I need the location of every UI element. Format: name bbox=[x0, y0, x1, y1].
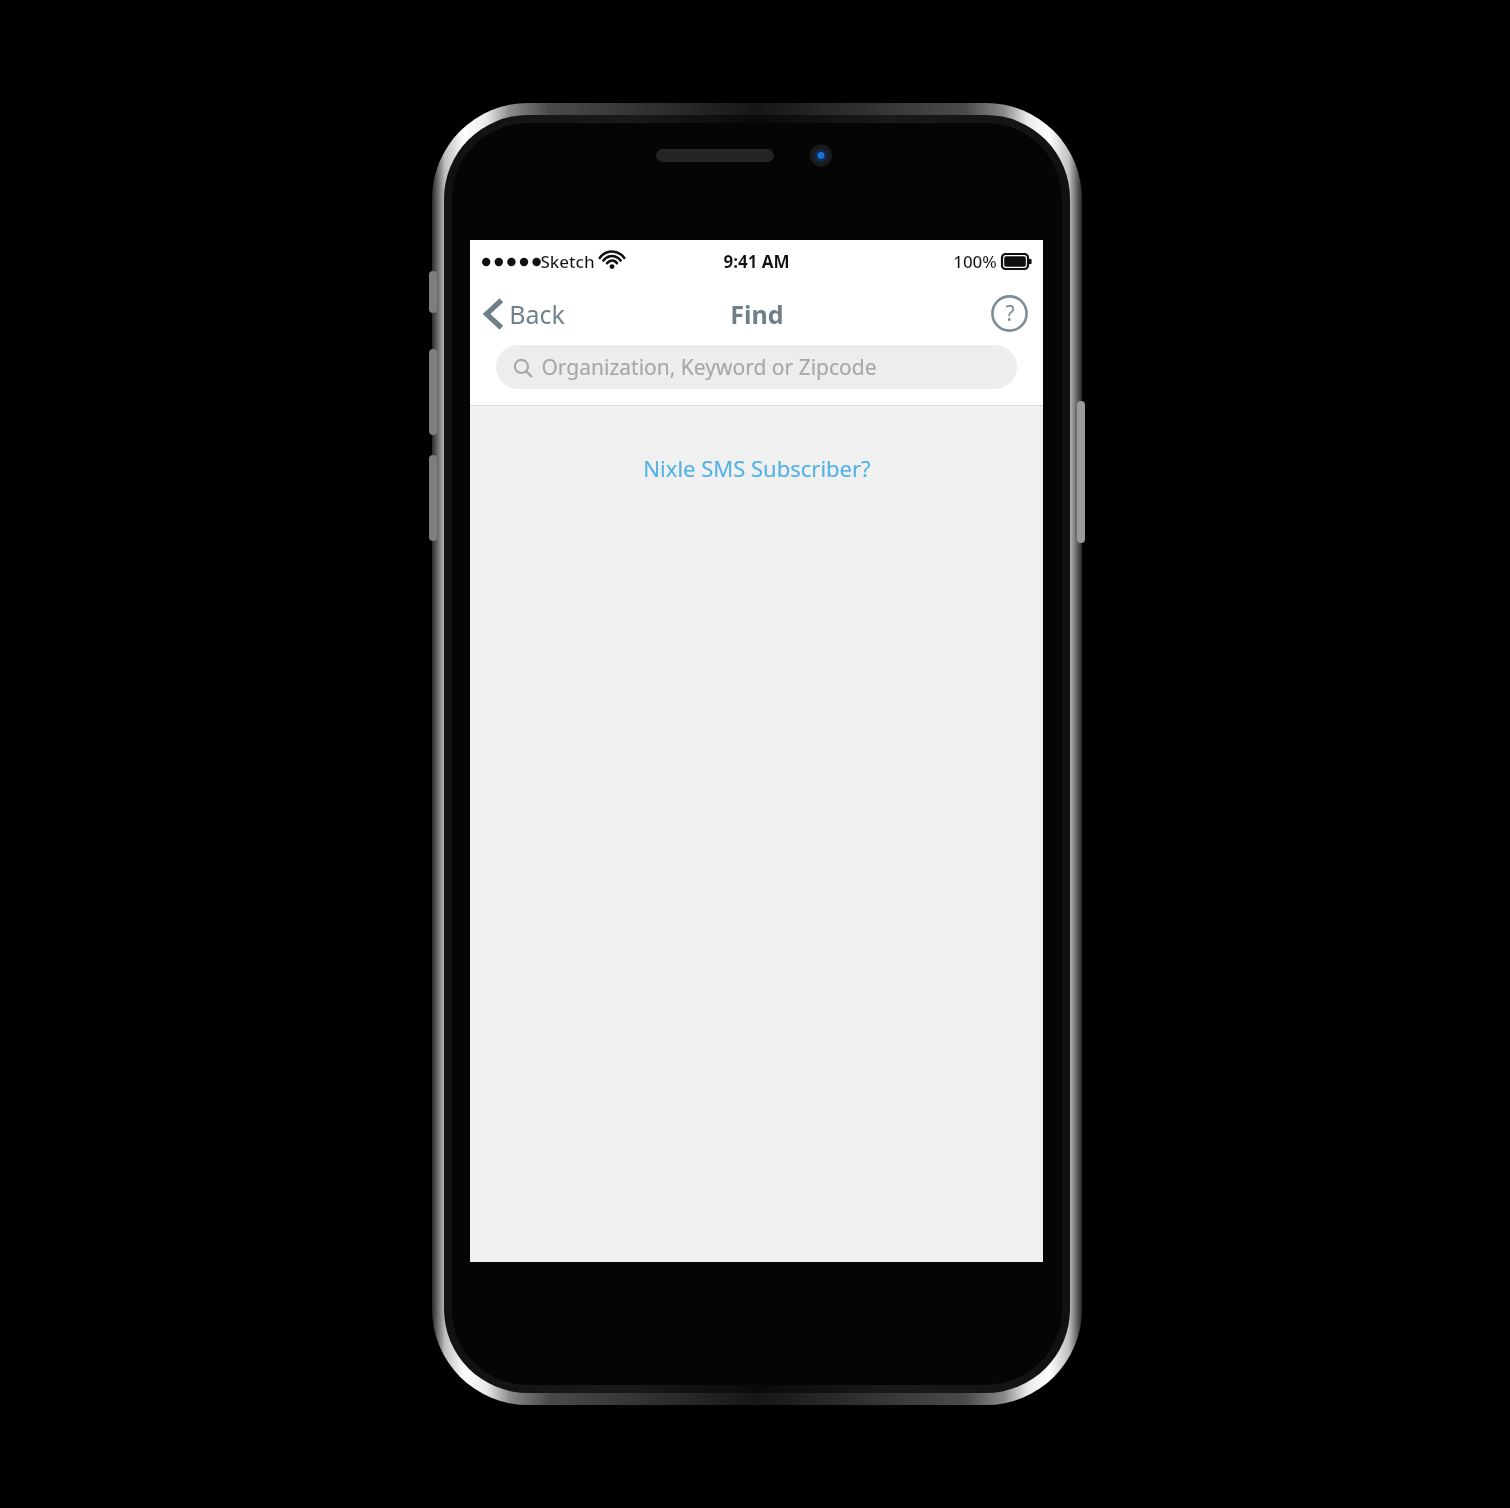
button[interactable]: Nixle SMS Subscriber? bbox=[635, 449, 879, 487]
button[interactable]: Help bbox=[976, 282, 1043, 345]
staticText: Organization, Keyword or Zipcode bbox=[541, 353, 877, 382]
button[interactable]: Back bbox=[470, 282, 579, 345]
staticText: ? bbox=[1005, 299, 1015, 328]
staticText: 9:41 AM bbox=[723, 250, 790, 273]
staticText: Find bbox=[730, 297, 784, 331]
staticText: Sketch bbox=[540, 250, 595, 273]
staticText: 100% bbox=[953, 250, 997, 273]
button[interactable]: Organization, Keyword or Zipcode bbox=[496, 345, 1017, 389]
staticText: Nixle SMS Subscriber? bbox=[643, 453, 871, 483]
staticText: Back bbox=[509, 297, 565, 331]
